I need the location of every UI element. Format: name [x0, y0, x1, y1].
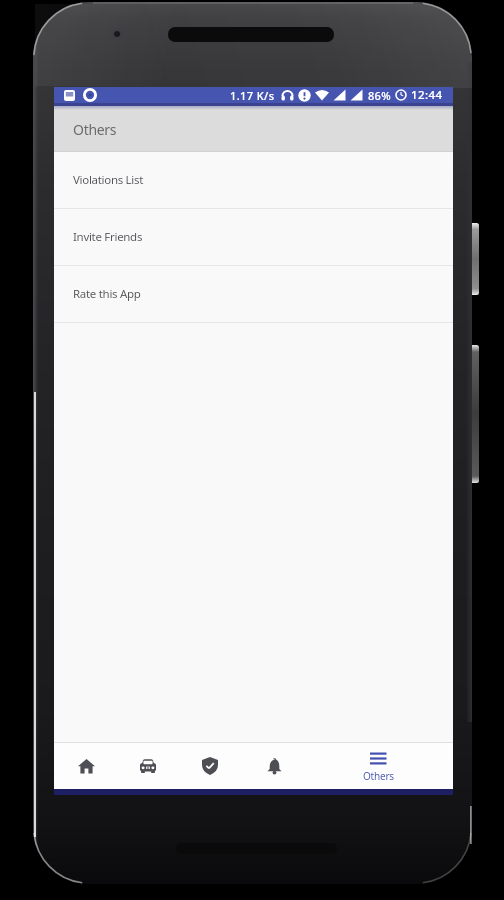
button[interactable]: [71, 743, 101, 789]
button[interactable]: Rate this App: [54, 266, 453, 323]
button[interactable]: [133, 743, 163, 789]
staticText: Others: [73, 120, 117, 139]
button[interactable]: [195, 743, 225, 789]
button[interactable]: Others: [338, 743, 418, 789]
staticText: Invite Friends: [73, 229, 143, 245]
staticText: Others: [363, 769, 394, 783]
button[interactable]: [259, 743, 289, 789]
staticText: 12:44: [411, 87, 443, 103]
button[interactable]: Invite Friends: [54, 209, 453, 266]
staticText: 86%: [368, 88, 391, 103]
button[interactable]: Violations List: [54, 152, 453, 209]
staticText: 1.17 K/s: [230, 88, 275, 103]
staticText: Violations List: [73, 172, 144, 188]
staticText: Rate this App: [73, 286, 141, 302]
